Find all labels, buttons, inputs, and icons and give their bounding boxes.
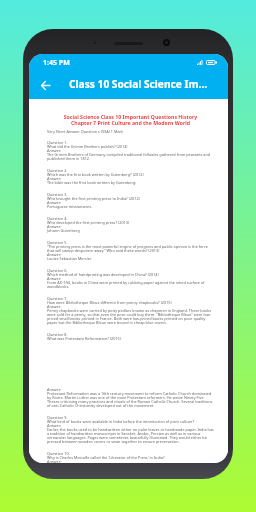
staticText: Question 1. What did the Grimm Brothers …	[47, 140, 214, 162]
staticText: Question 5. “The printing press is the m…	[47, 240, 214, 262]
staticText: Question 7. How were Bibliotheque Bleue …	[47, 296, 214, 326]
staticText: Social Science Class 10 Important Questi…	[47, 113, 214, 127]
staticText: Question 6. Which method of handprinting…	[47, 268, 214, 290]
staticText: Very Short Answer Question s (VSA) 1 Mar…	[47, 129, 214, 134]
staticText: Class 10 Social Science Im…	[69, 77, 208, 91]
button[interactable]: Back	[29, 69, 58, 99]
staticText: Question 3. Who brought the first printi…	[47, 192, 214, 210]
staticText: Question 10. Why is Charles Metcalfe cal…	[47, 451, 214, 463]
staticText: Question 2. Which was the first book wri…	[47, 168, 214, 186]
staticText: Question 4. Who developed the first prin…	[47, 216, 214, 234]
staticText: Question 9. What kind of books were avai…	[47, 415, 214, 445]
staticText: Answer: Protestant Reformation was a 16t…	[47, 387, 214, 409]
staticText: 1:45 PM	[43, 58, 70, 68]
staticText: Question 8. What was Protestant Reformat…	[47, 332, 214, 342]
